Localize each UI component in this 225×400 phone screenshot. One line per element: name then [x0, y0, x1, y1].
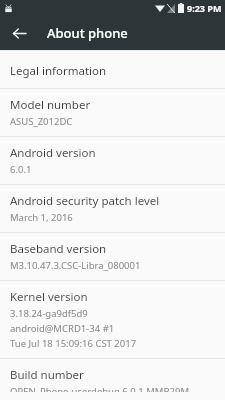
button[interactable]: Back	[6, 20, 32, 46]
staticText: March 1, 2016	[10, 211, 73, 224]
button[interactable]: Baseband version	[0, 233, 225, 280]
staticText: Baseband version	[10, 241, 107, 257]
staticText: 3.18.24-ga9df5d9	[10, 307, 88, 320]
staticText: Build number	[10, 367, 84, 383]
button[interactable]: Build number	[0, 359, 225, 400]
staticText: Legal information	[10, 63, 107, 79]
staticText: ASUS_Z012DC	[10, 115, 73, 128]
staticText: Kernel version	[10, 289, 88, 305]
staticText: M3.10.47.3.CSC-Libra_080001	[10, 259, 141, 272]
staticText: Tue Jul 18 15:09:16 CST 2017	[10, 337, 137, 350]
staticText: About phone	[47, 24, 128, 42]
button[interactable]: Android security patch level	[0, 185, 225, 232]
button[interactable]: Kernel version	[0, 281, 225, 358]
button[interactable]: Android version	[0, 137, 225, 184]
button[interactable]: Legal information	[0, 55, 225, 88]
staticText: 9:23 PM	[187, 2, 222, 14]
staticText: 6.0.1	[10, 163, 32, 176]
button[interactable]: Model number	[0, 89, 225, 136]
staticText: OPEN_Phone-userdebug 6.0.1 MMB29M	[10, 385, 190, 392]
staticText: Android version	[10, 145, 96, 161]
staticText: android@MCRD1-34 #1	[10, 322, 115, 335]
staticText: Model number	[10, 97, 91, 113]
staticText: Android security patch level	[10, 193, 160, 209]
